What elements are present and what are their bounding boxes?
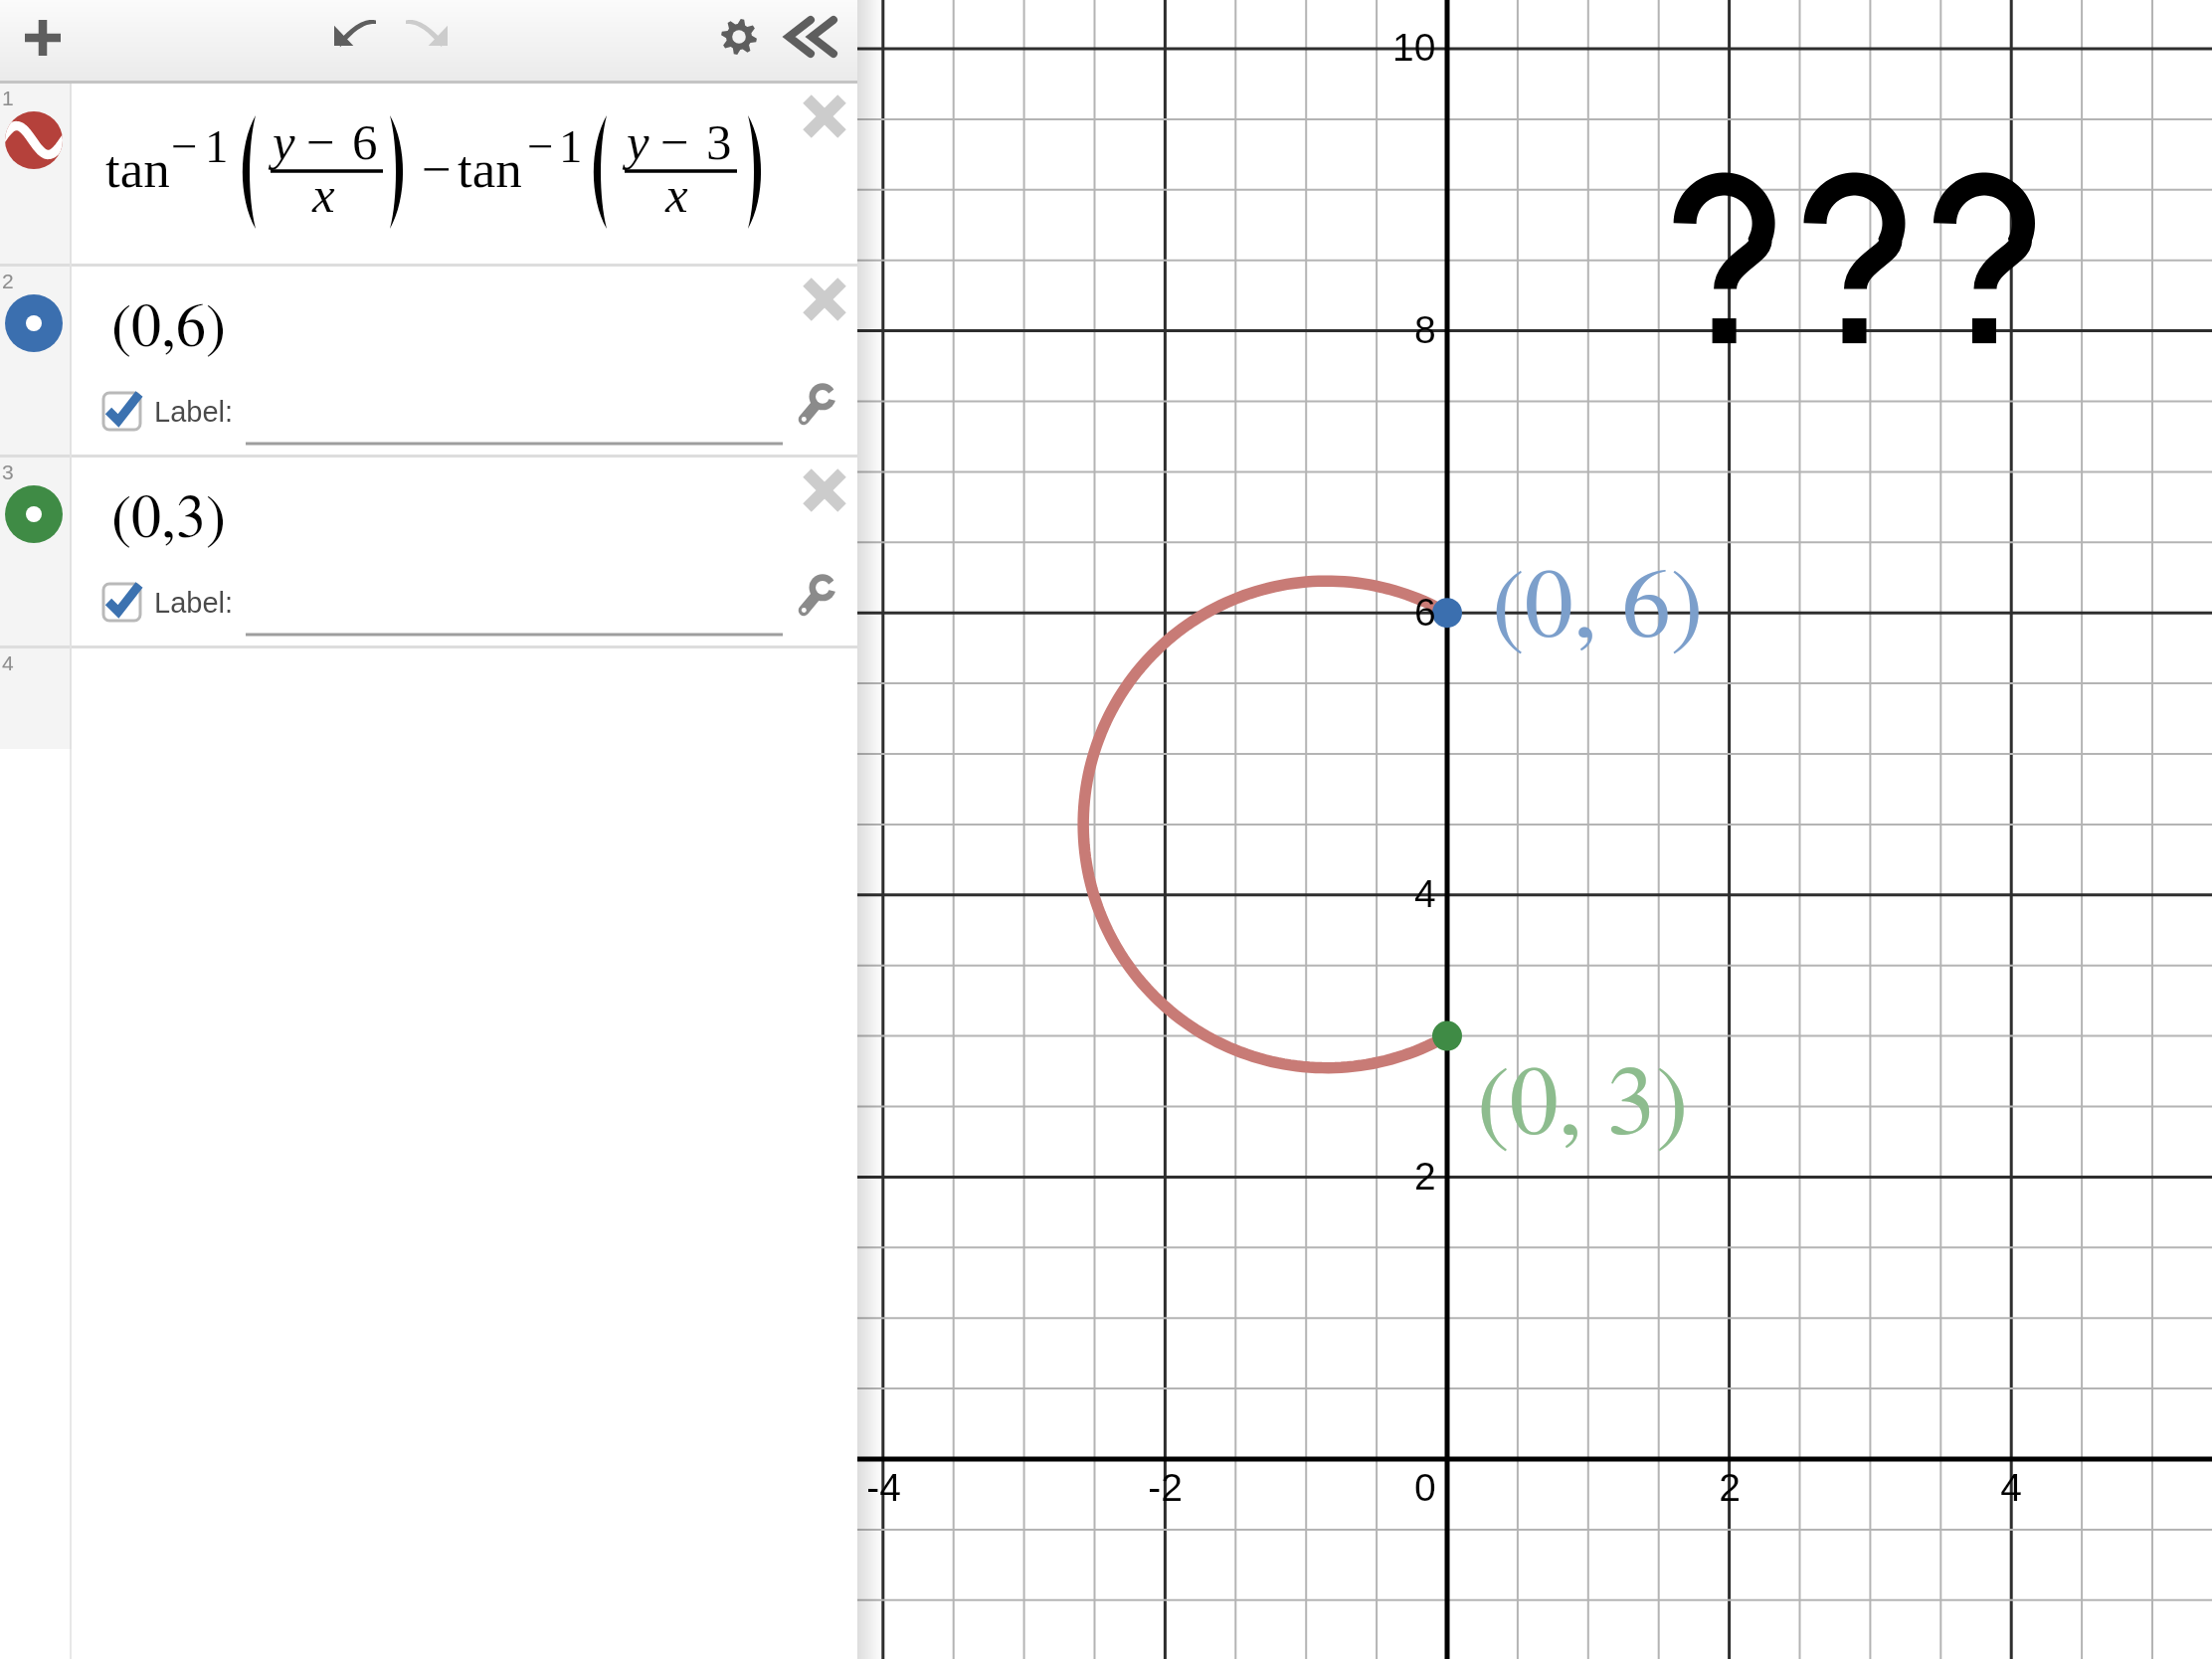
staticText: 4 xyxy=(1414,872,1436,916)
button[interactable]: 3 xyxy=(0,458,857,648)
button[interactable]: Point settings xyxy=(796,382,840,427)
button[interactable]: 4 xyxy=(0,648,857,749)
button[interactable]: 2 xyxy=(0,267,857,458)
button[interactable]: Point settings xyxy=(796,573,840,618)
staticText: − xyxy=(660,114,689,170)
staticText: − xyxy=(306,114,335,170)
staticText: (0,6) xyxy=(111,298,226,358)
button[interactable]: Delete expression xyxy=(790,265,859,334)
staticText: y xyxy=(627,114,649,170)
staticText: 2 xyxy=(1719,1466,1741,1510)
staticText: − xyxy=(171,120,198,172)
staticText: − xyxy=(422,140,452,199)
staticText: 1 xyxy=(2,87,14,109)
staticText: y xyxy=(273,114,295,170)
button[interactable]: Collapse panel xyxy=(778,2,843,72)
staticText: 2 xyxy=(1414,1155,1436,1198)
button[interactable]: Show label xyxy=(99,579,147,627)
staticText: 4 xyxy=(2000,1466,2022,1510)
staticText: 3 xyxy=(706,114,732,170)
staticText: − xyxy=(527,120,554,172)
button[interactable]: Settings xyxy=(704,2,774,72)
staticText: 4 xyxy=(2,651,14,674)
button[interactable]: Undo xyxy=(334,23,376,46)
staticText: x xyxy=(312,167,335,223)
staticText: (0,3) xyxy=(111,489,226,549)
staticText: -2 xyxy=(1148,1466,1183,1510)
staticText: -4 xyxy=(866,1466,901,1510)
staticText: 2 xyxy=(2,270,14,292)
button[interactable]: Redo xyxy=(406,23,448,46)
staticText: 10 xyxy=(1392,26,1436,70)
button[interactable]: Delete expression xyxy=(790,82,859,151)
staticText: (0, 6) xyxy=(1492,559,1704,656)
staticText: tan xyxy=(458,140,522,199)
button[interactable]: Delete expression xyxy=(790,456,859,525)
button[interactable]: Add expression xyxy=(8,3,78,73)
staticText: tan xyxy=(105,140,170,199)
staticText: 3 xyxy=(2,461,14,483)
staticText: (0, 3) xyxy=(1477,1056,1689,1154)
button[interactable]: Show label xyxy=(99,388,147,436)
button[interactable]: 1 xyxy=(0,84,857,267)
staticText: Label: xyxy=(154,587,234,619)
staticText: 8 xyxy=(1414,308,1436,352)
staticText: x xyxy=(665,167,688,223)
staticText: 1 xyxy=(205,120,229,172)
staticText: 6 xyxy=(352,114,378,170)
staticText: 1 xyxy=(559,120,583,172)
staticText: 6 xyxy=(1414,591,1436,635)
staticText: 0 xyxy=(1414,1466,1436,1510)
staticText: Label: xyxy=(154,396,234,428)
